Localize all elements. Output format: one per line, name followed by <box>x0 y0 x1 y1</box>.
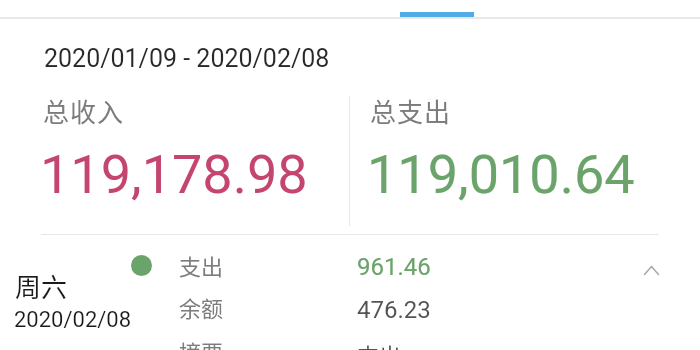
staticText: 支出 <box>179 249 224 281</box>
staticText: 119,178.98 <box>40 143 308 206</box>
staticText: 摘要 <box>179 335 224 350</box>
staticText: 总收入 <box>43 92 125 130</box>
button[interactable]: 总支出 <box>350 92 618 226</box>
button[interactable]: Statistics tab <box>362 0 512 17</box>
staticText: 周六 <box>15 267 68 305</box>
staticText: 119,010.64 <box>367 143 635 206</box>
staticText: 支出 <box>357 338 402 350</box>
staticText: 2020/01/09 - 2020/02/08 <box>44 44 330 73</box>
staticText: 961.46 <box>357 253 431 281</box>
staticText: 余额 <box>179 291 224 323</box>
button[interactable]: 周六 <box>0 235 700 350</box>
button[interactable]: 2020/01/09 - 2020/02/08 <box>36 38 336 76</box>
button[interactable]: Collapse day details <box>629 248 673 292</box>
staticText: 2020/02/08 <box>14 307 132 333</box>
staticText: 476.23 <box>357 296 431 324</box>
staticText: 总支出 <box>370 92 452 130</box>
button[interactable]: 总收入 <box>0 92 349 226</box>
